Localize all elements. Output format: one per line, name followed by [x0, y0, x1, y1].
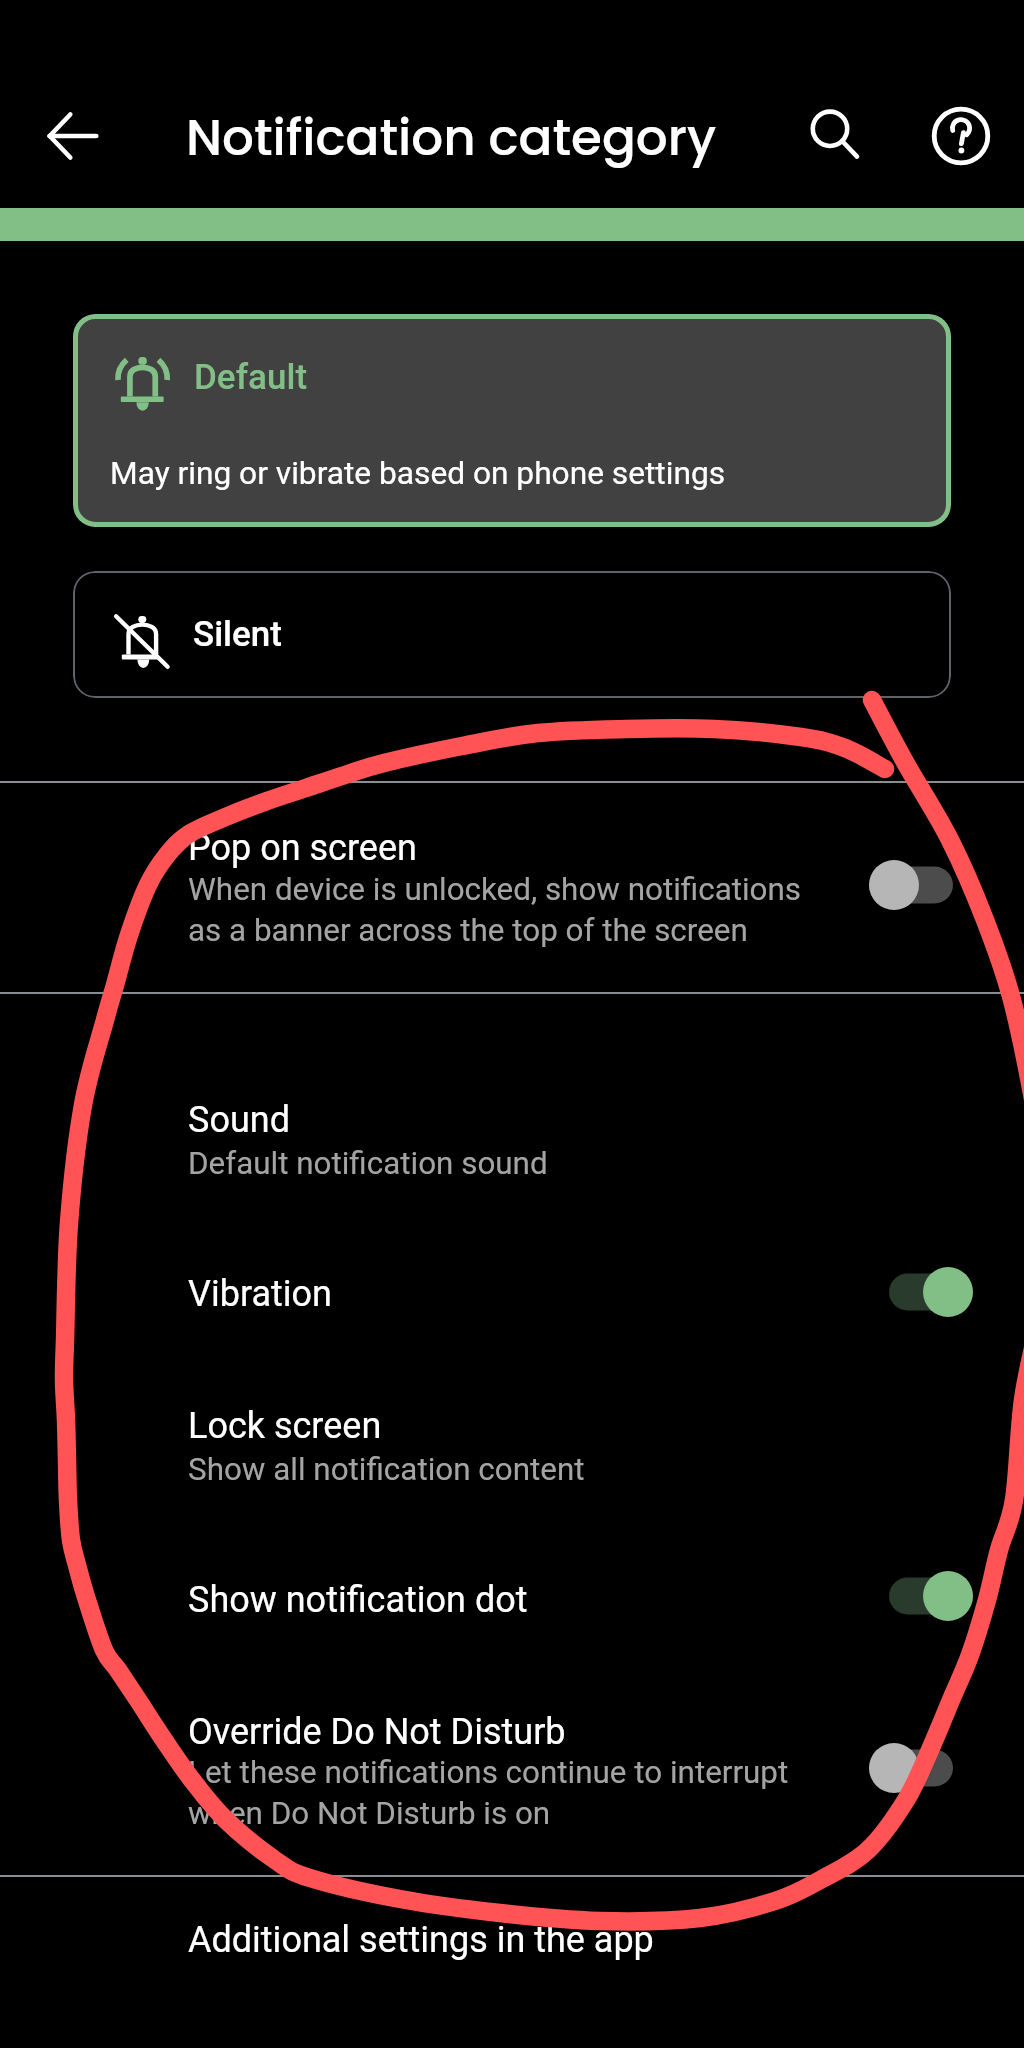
staticText: Silent	[193, 614, 282, 655]
staticText: Pop on screen	[188, 827, 417, 869]
button[interactable]: Help	[911, 86, 1011, 186]
button[interactable]: Lock screen	[0, 1378, 1024, 1550]
staticText: When device is unlocked, show notificati…	[188, 871, 802, 949]
staticText: Lock screen	[188, 1405, 382, 1447]
button[interactable]: Override Do Not Disturb	[869, 1740, 973, 1796]
button[interactable]: Pop on screen	[869, 857, 973, 913]
button[interactable]: Pop on screen	[0, 781, 1024, 992]
staticText: May ring or vibrate based on phone setti…	[110, 455, 726, 492]
staticText: Sound	[188, 1099, 290, 1141]
button[interactable]: Silent	[73, 571, 951, 698]
button[interactable]: Back	[23, 86, 123, 186]
button[interactable]: Sound	[0, 992, 1024, 1246]
staticText: Default	[194, 357, 308, 398]
button[interactable]: Additional settings in the app	[0, 1875, 1024, 2048]
staticText: Notification category	[186, 103, 717, 173]
button[interactable]: Search	[780, 86, 880, 186]
button[interactable]: Override Do Not Disturb	[0, 1690, 1024, 1875]
staticText: Vibration	[188, 1273, 332, 1315]
button[interactable]: Vibration	[869, 1264, 973, 1320]
staticText: Show notification dot	[188, 1579, 528, 1621]
staticText: Override Do Not Disturb	[188, 1711, 566, 1753]
button[interactable]: Show notification dot	[0, 1550, 1024, 1690]
staticText: Let these notifications continue to inte…	[188, 1754, 789, 1832]
staticText: Default notification sound	[188, 1145, 548, 1182]
button[interactable]: Vibration	[0, 1246, 1024, 1378]
button[interactable]: Default	[73, 314, 951, 527]
staticText: Additional settings in the app	[188, 1919, 654, 1961]
staticText: Show all notification content	[188, 1451, 585, 1488]
button[interactable]: Show notification dot	[869, 1568, 973, 1624]
